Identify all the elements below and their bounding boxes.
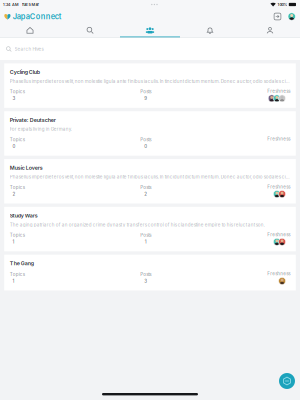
staticText: Phasellus imperdiet eros velit, non mole… [10,79,290,84]
staticText: 0 [144,144,147,149]
staticText: Private: Deutscher [10,117,56,123]
staticText: Topics [10,89,25,94]
staticText: 0 [12,144,15,149]
staticText: Posts [140,137,151,142]
staticText: 100% [277,2,287,7]
button[interactable]: The Gang [4,255,296,290]
staticText: Topics [10,185,25,190]
staticText: The Gang [10,260,34,267]
staticText: 2 [12,191,15,197]
staticText: 9 [144,96,147,101]
button[interactable]: Cycling Club [4,63,296,108]
button[interactable]: Study Wars [4,207,296,251]
staticText: Topics [10,232,25,238]
staticText: Phasellus imperdiet eros velit, non mole… [10,174,290,180]
staticText: For expats living in Germany. [10,126,72,132]
button[interactable]: Music Lovers [4,159,296,203]
staticText: Freshness [267,271,290,276]
button[interactable]: Search [60,24,120,38]
staticText: Posts [140,89,151,94]
button[interactable]: Private: Deutscher [4,111,296,156]
staticText: 1 [12,239,14,245]
staticText: JapaConnect [13,12,62,21]
staticText: Posts [140,185,151,190]
staticText: 3 [144,278,147,284]
staticText: Freshness [267,184,290,189]
staticText: Freshness [267,136,290,142]
button[interactable]: Notifications [180,24,240,38]
staticText: Tue 5 Mar [22,2,39,7]
staticText: Freshness [267,88,290,94]
staticText: The aging patriarch of an organized crim… [10,222,265,227]
button[interactable]: Account [283,11,295,22]
staticText: Posts [140,232,151,238]
button[interactable]: Create hive [279,373,295,389]
staticText: Posts [140,272,151,277]
staticText: 3 [12,96,15,101]
staticText: 1 [12,278,14,284]
button[interactable]: Hives [120,24,180,38]
button[interactable]: Search Hives [0,38,300,60]
staticText: Music Lovers [10,164,43,171]
staticText: Study Wars [10,212,38,219]
button[interactable]: Profile [240,24,300,38]
button[interactable]: Home [0,24,60,38]
button[interactable]: Messages [272,11,283,22]
staticText: Search Hives [15,46,44,52]
staticText: Topics [10,137,25,142]
staticText: Topics [10,272,25,277]
staticText: Cycling Club [10,69,40,75]
staticText: Freshness [267,232,290,237]
staticText: 2 [144,191,147,197]
staticText: 1 [145,239,147,245]
staticText: 1:34 AM [3,2,19,7]
